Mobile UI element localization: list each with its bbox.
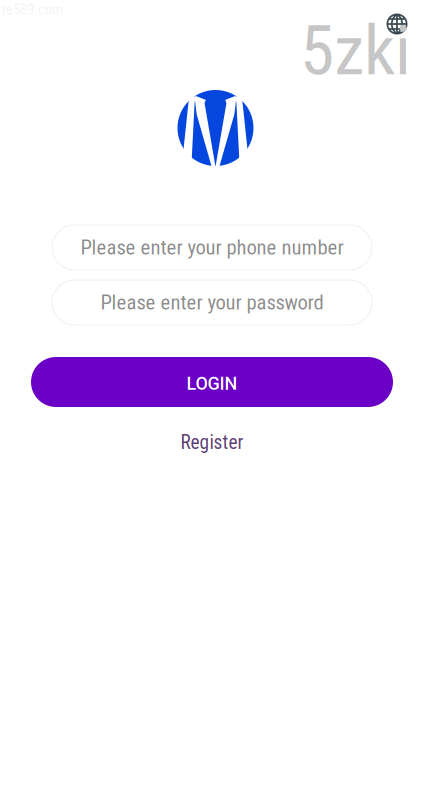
staticText: 5zki <box>300 10 411 91</box>
button[interactable]: LOGIN <box>31 357 393 407</box>
staticText: LOGIN <box>186 373 237 394</box>
staticText: Please enter your phone number <box>80 235 343 260</box>
button[interactable]: Language <box>381 8 413 40</box>
staticText: Please enter your password <box>100 290 323 315</box>
staticText: re589.com <box>2 1 63 18</box>
button[interactable]: Register <box>170 427 253 458</box>
staticText: Register <box>180 431 243 454</box>
